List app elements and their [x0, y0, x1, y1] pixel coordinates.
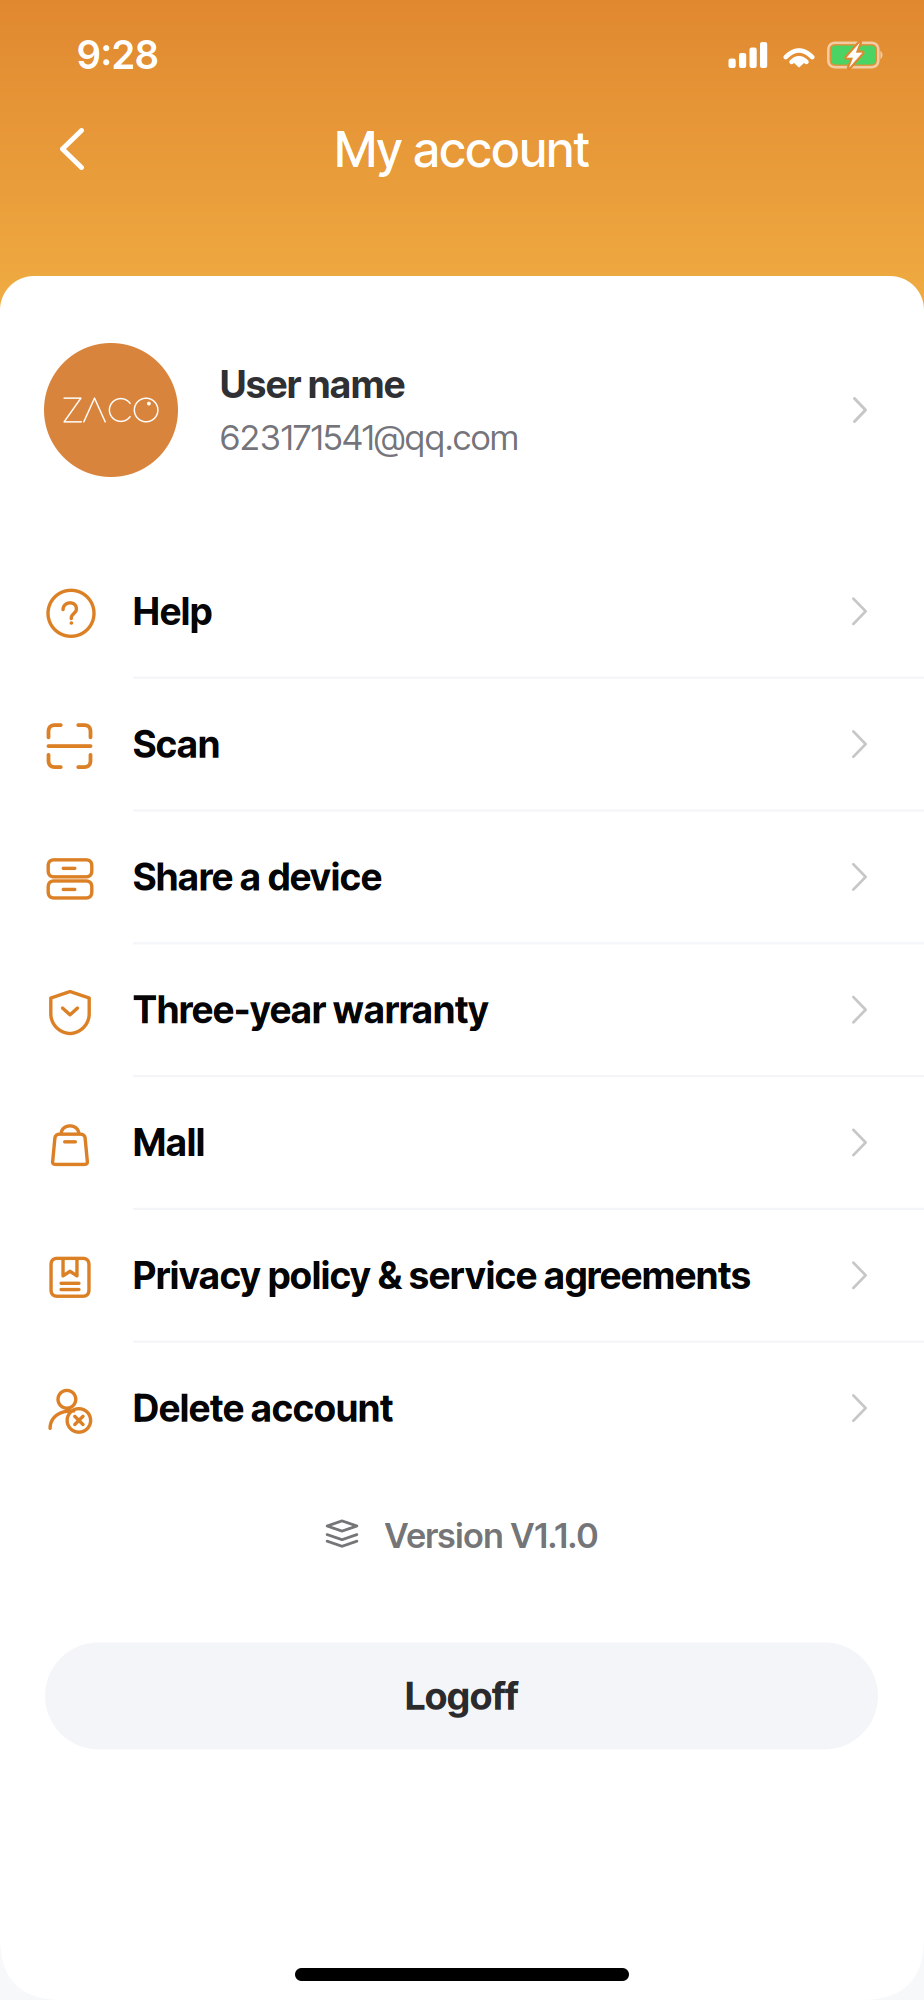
staticText: Logoff — [405, 1673, 518, 1719]
staticText: Version V1.1.0 — [384, 1514, 598, 1556]
staticText: Privacy policy & service agreements — [133, 1253, 751, 1298]
button[interactable]: Share a device — [0, 812, 924, 942]
button[interactable]: Back — [34, 111, 110, 187]
button[interactable]: Logoff — [45, 1642, 878, 1749]
button[interactable]: Three-year warranty — [0, 944, 924, 1075]
staticText: Scan — [133, 721, 220, 767]
staticText: Help — [133, 589, 212, 634]
button[interactable]: Privacy policy & service agreements — [0, 1210, 924, 1341]
button[interactable]: User name — [0, 343, 924, 477]
staticText: 9:28 — [77, 32, 159, 78]
button[interactable]: Help — [0, 546, 924, 677]
button[interactable]: Mall — [0, 1077, 924, 1208]
staticText: My account — [334, 119, 589, 179]
staticText: 623171541@qq.com — [220, 416, 519, 458]
button[interactable]: Delete account — [0, 1343, 924, 1473]
button[interactable]: Scan — [0, 679, 924, 809]
staticText: Delete account — [133, 1385, 393, 1431]
staticText: User name — [220, 362, 405, 407]
staticText: Three-year warranty — [133, 987, 489, 1032]
staticText: Mall — [133, 1120, 205, 1165]
staticText: Share a device — [133, 854, 382, 899]
